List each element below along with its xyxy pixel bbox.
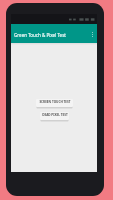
- button[interactable]: More options: [87, 29, 97, 39]
- staticText: Green Touch & Pixel Test: [14, 32, 66, 38]
- button[interactable]: DEAD PIXEL TEST: [40, 112, 69, 121]
- button[interactable]: SCREEN TOUCH TEST: [36, 99, 73, 108]
- staticText: DEAD PIXEL TEST: [42, 113, 68, 117]
- staticText: SCREEN TOUCH TEST: [39, 100, 71, 104]
